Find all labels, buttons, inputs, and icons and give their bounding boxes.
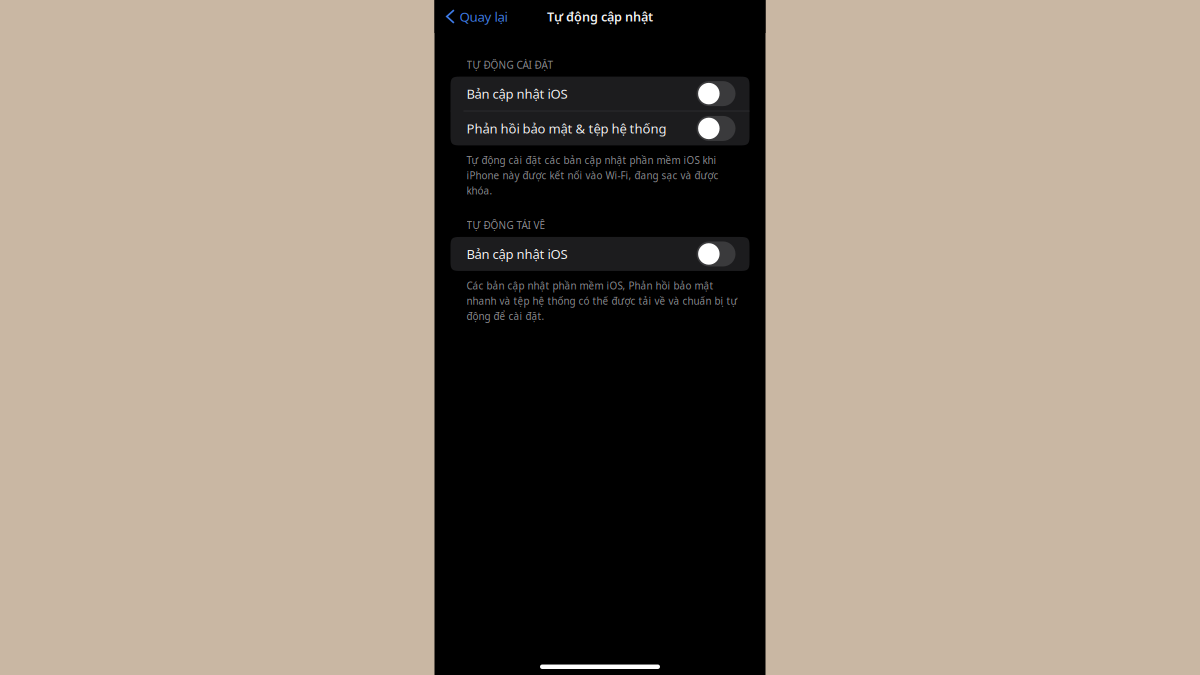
button[interactable]: Bản cập nhật iOS: [450, 237, 749, 271]
button[interactable]: Bản cập nhật iOS: [450, 77, 749, 111]
button[interactable]: Phản hồi bảo mật & tệp hệ thống: [450, 111, 749, 145]
staticText: Bản cập nhật iOS: [466, 245, 567, 263]
staticText: Các bản cập nhật phần mềm iOS, Phản hồi …: [466, 279, 737, 323]
staticText: Tự động cập nhật: [547, 8, 653, 25]
staticText: Bản cập nhật iOS: [466, 85, 567, 102]
staticText: Tự động cài đặt các bản cập nhật phần mề…: [466, 153, 718, 197]
staticText: Phản hồi bảo mật & tệp hệ thống: [466, 119, 666, 137]
staticText: TỰ ĐỘNG TẢI VỀ: [466, 218, 545, 232]
button[interactable]: Quay lại: [434, 0, 515, 33]
staticText: TỰ ĐỘNG CÀI ĐẶT: [466, 58, 553, 72]
staticText: Quay lại: [459, 7, 507, 26]
